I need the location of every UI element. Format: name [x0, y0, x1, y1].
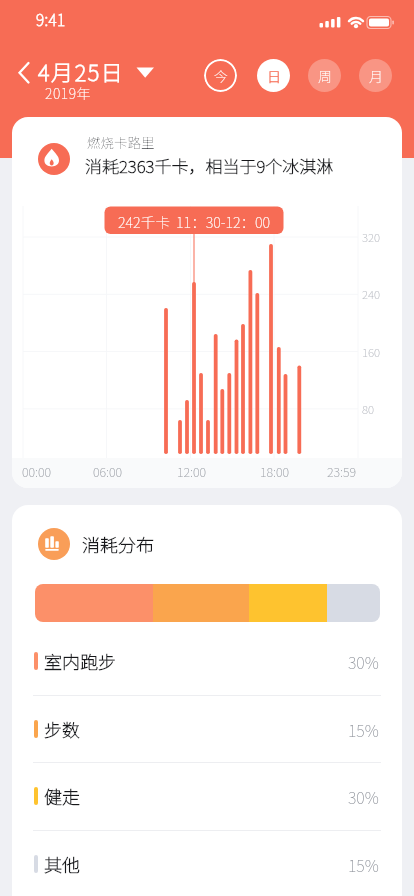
button[interactable]: 健走: [12, 762, 402, 830]
staticText: 其他: [44, 851, 80, 877]
button[interactable]: 日: [257, 59, 290, 92]
staticText: 18:00: [260, 462, 289, 478]
staticText: 06:00: [93, 462, 122, 478]
staticText: 160: [362, 344, 380, 360]
button[interactable]: [10, 52, 160, 102]
staticText: 9:41: [36, 8, 66, 30]
staticText: 月: [369, 66, 383, 86]
staticText: 15%: [348, 853, 379, 876]
staticText: 242千卡 11：30-12：00: [118, 211, 271, 232]
staticText: 00:00: [22, 462, 51, 478]
staticText: 15%: [348, 718, 379, 741]
button[interactable]: 今: [204, 59, 237, 92]
staticText: 日: [267, 66, 281, 86]
staticText: 240: [362, 286, 380, 302]
staticText: 30%: [348, 785, 379, 808]
staticText: 今: [214, 66, 228, 86]
staticText: 周: [318, 66, 332, 86]
staticText: 30%: [348, 650, 379, 673]
staticText: 23:59: [327, 462, 356, 478]
staticText: 4月25日: [38, 55, 125, 87]
staticText: 燃烧卡路里: [87, 132, 155, 152]
button[interactable]: 周: [308, 59, 341, 92]
staticText: 2019年: [45, 83, 92, 103]
staticText: 320: [362, 229, 380, 245]
staticText: 消耗分布: [82, 531, 154, 557]
staticText: 室内跑步: [44, 648, 116, 674]
staticText: 80: [362, 401, 374, 417]
staticText: 步数: [44, 716, 80, 742]
staticText: 12:00: [177, 462, 206, 478]
button[interactable]: 室内跑步: [12, 627, 402, 695]
button[interactable]: 步数: [12, 695, 402, 763]
staticText: 消耗2363千卡，相当于9个冰淇淋: [85, 153, 334, 178]
button[interactable]: 其他: [12, 830, 402, 896]
staticText: 健走: [44, 783, 80, 809]
button[interactable]: 月: [359, 59, 392, 92]
